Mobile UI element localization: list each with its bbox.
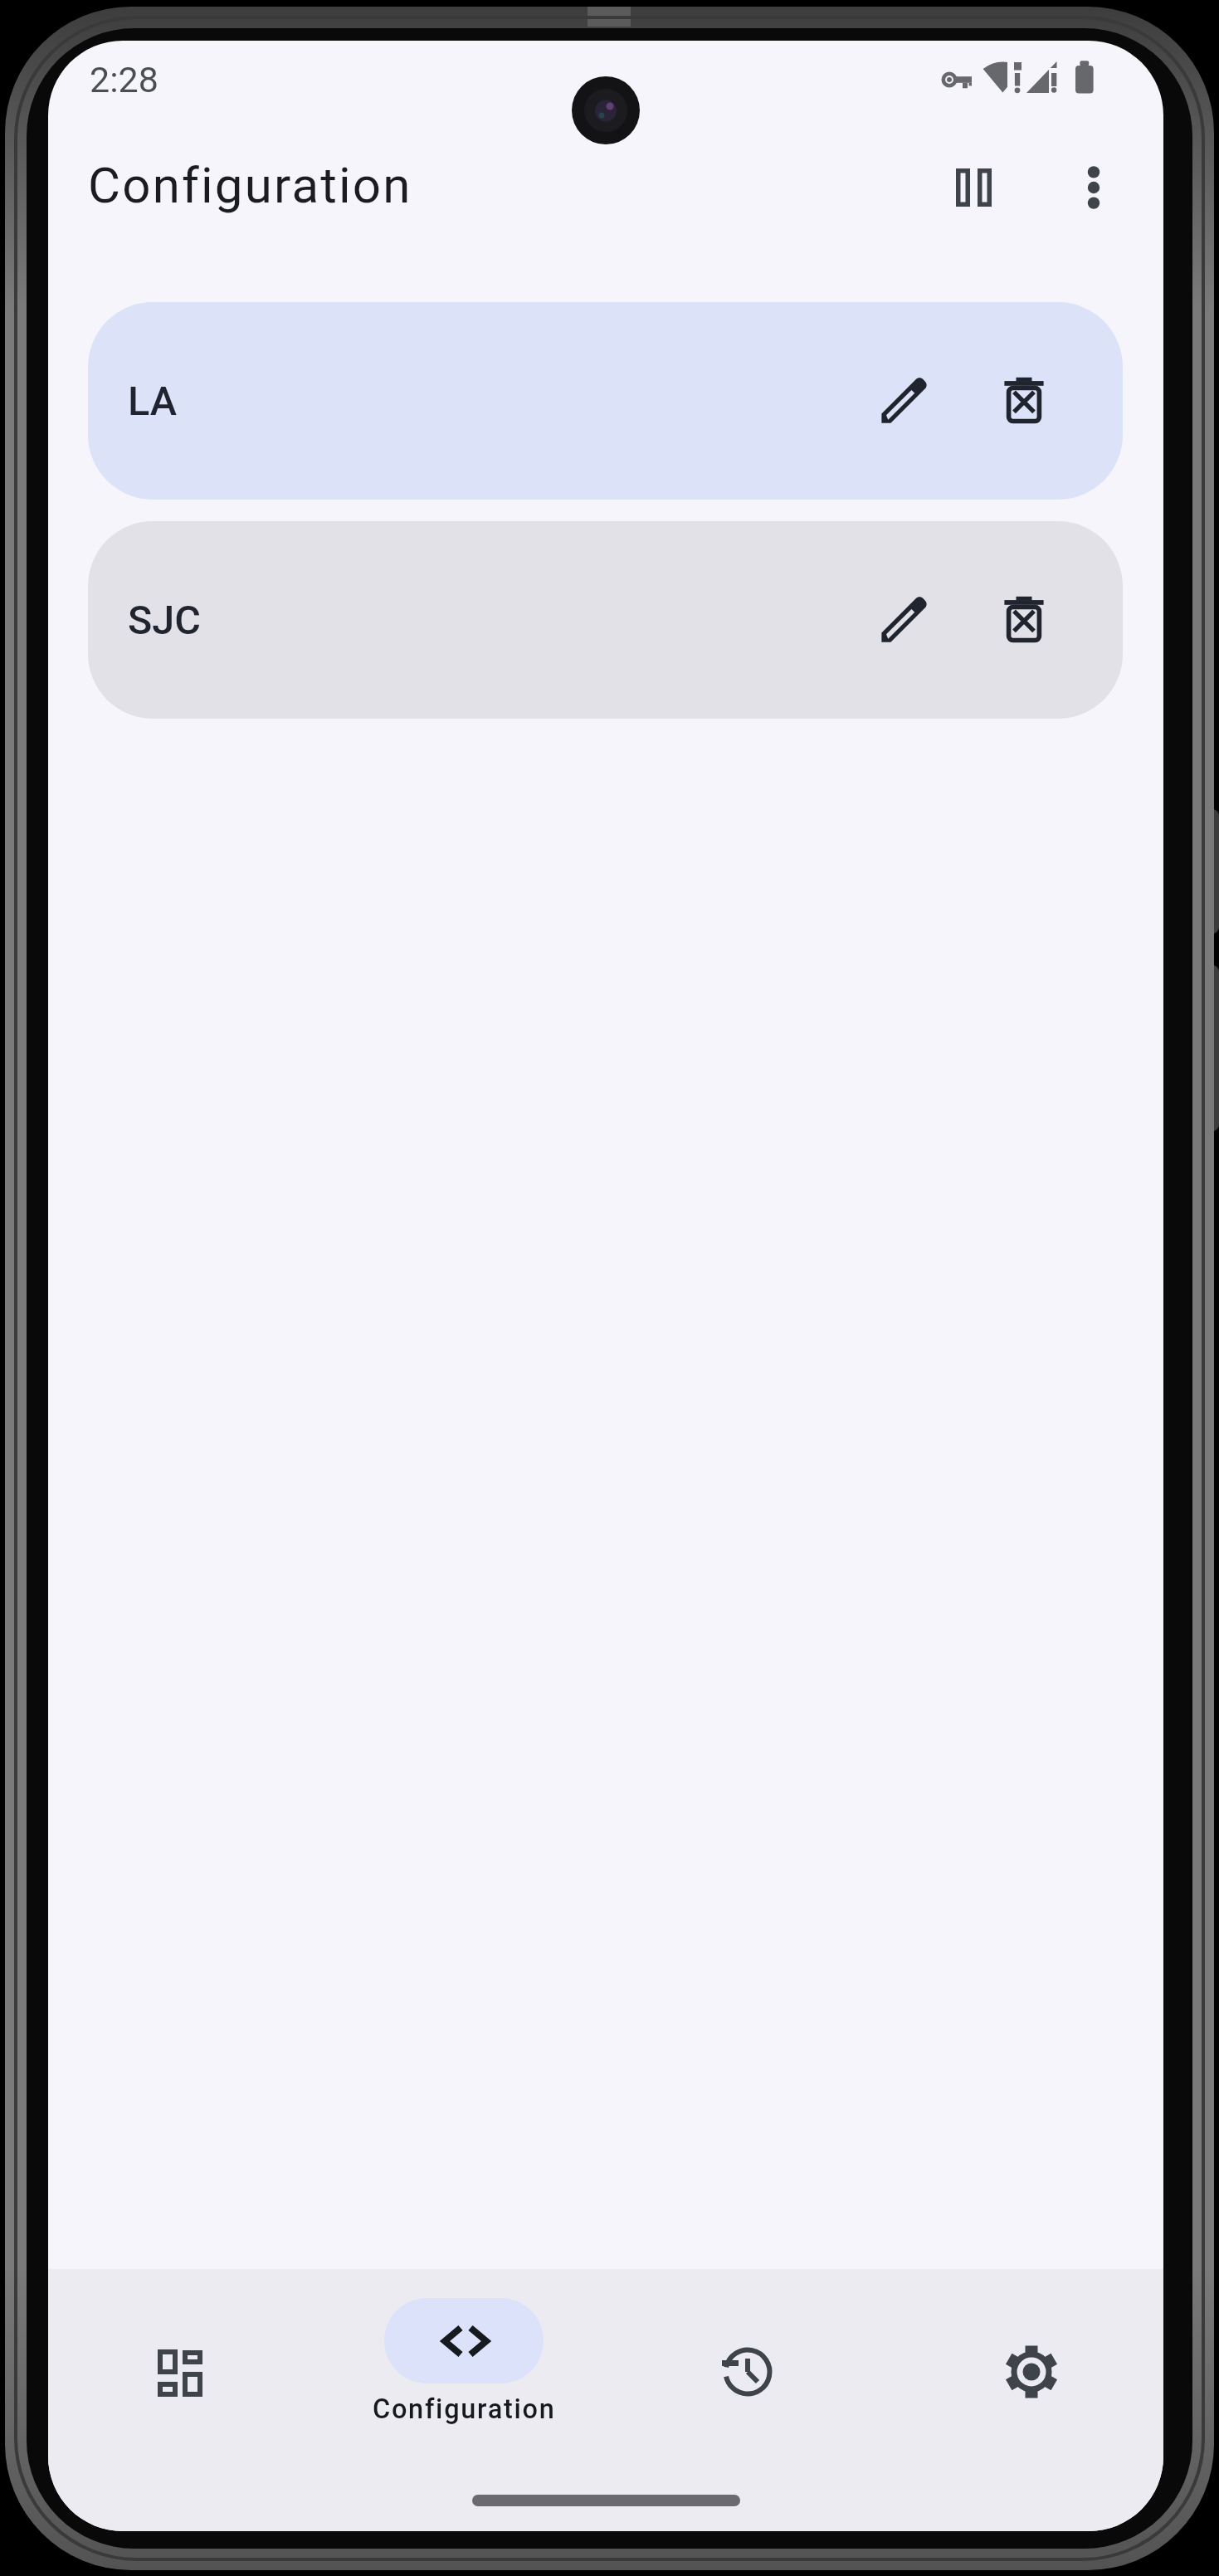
- button[interactable]: SJC: [88, 521, 1123, 719]
- staticText: 2:28: [90, 59, 158, 100]
- button[interactable]: [885, 2269, 1163, 2460]
- button[interactable]: [989, 585, 1059, 655]
- button[interactable]: [1060, 153, 1128, 222]
- staticText: LA: [128, 378, 177, 425]
- button[interactable]: LA: [88, 302, 1123, 500]
- button[interactable]: [989, 366, 1059, 436]
- button[interactable]: [327, 2269, 606, 2460]
- button[interactable]: [869, 585, 939, 655]
- button[interactable]: [929, 153, 997, 222]
- staticText: Configuration: [373, 2393, 556, 2425]
- staticText: SJC: [128, 597, 201, 644]
- button[interactable]: [606, 2269, 885, 2460]
- button[interactable]: [48, 2269, 327, 2460]
- staticText: Configuration: [88, 156, 412, 214]
- button[interactable]: [869, 366, 939, 436]
